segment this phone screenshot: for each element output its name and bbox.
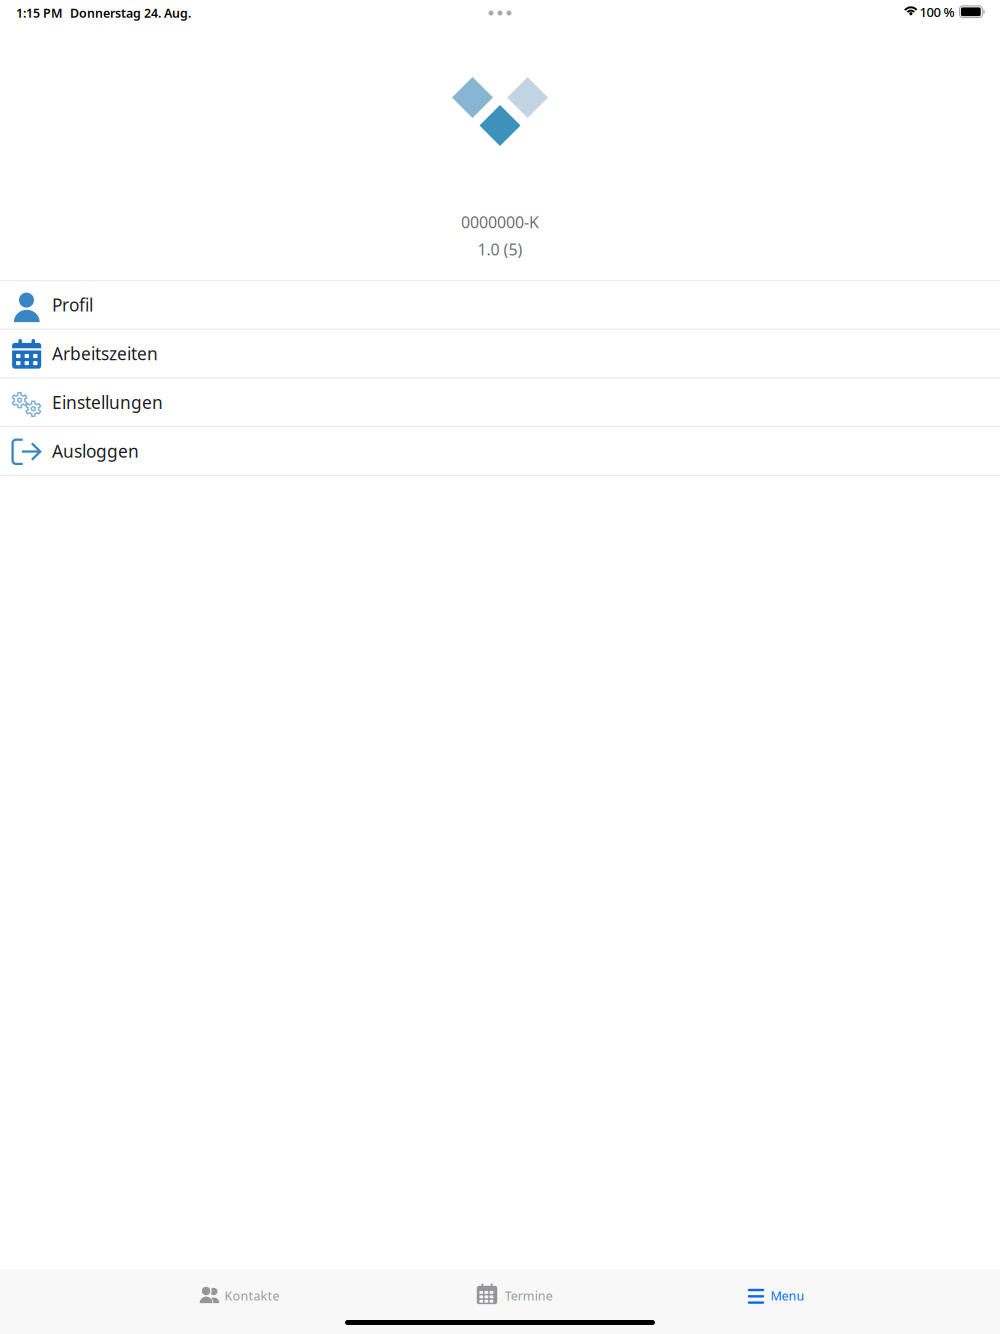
staticText: 100 % — [919, 3, 954, 21]
staticText: Ausloggen — [52, 439, 139, 462]
staticText: Einstellungen — [52, 391, 163, 414]
button[interactable]: Menu — [747, 1269, 832, 1313]
staticText: 1:15 PM — [16, 5, 63, 21]
staticText: Menu — [770, 1287, 804, 1304]
staticText: Profil — [52, 293, 93, 316]
button[interactable]: Termine — [477, 1269, 567, 1313]
button[interactable]: Kontakte — [199, 1269, 287, 1313]
staticText: Donnerstag 24. Aug. — [70, 5, 191, 21]
button[interactable]: Einstellungen — [0, 378, 1000, 427]
staticText: Arbeitszeiten — [52, 342, 158, 365]
staticText: 1.0 (5) — [477, 239, 522, 260]
staticText: 0000000-K — [461, 211, 539, 233]
staticText: Termine — [505, 1287, 553, 1304]
staticText: Kontakte — [225, 1287, 280, 1304]
button[interactable]: Profil — [0, 281, 1000, 330]
button[interactable]: Ausloggen — [0, 427, 1000, 476]
button[interactable]: Arbeitszeiten — [0, 330, 1000, 378]
